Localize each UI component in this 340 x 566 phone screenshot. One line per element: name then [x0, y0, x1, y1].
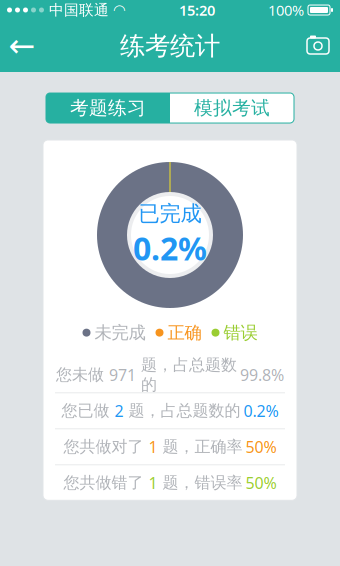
staticText: 1 [148, 436, 157, 457]
staticText: 已完成 [138, 201, 201, 227]
staticText: 50% [245, 472, 276, 493]
staticText: 2 [114, 400, 123, 421]
staticText: ← [8, 28, 35, 64]
staticText: 50% [245, 436, 276, 457]
staticText: 中国联通 [49, 1, 109, 19]
staticText: 模拟考试 [194, 96, 270, 119]
staticText: 您共做对了 [63, 437, 143, 457]
staticText: 题，占总题数的 [128, 401, 240, 421]
staticText: 题，占总题数的 [141, 355, 237, 394]
staticText: 错误 [223, 322, 257, 343]
button[interactable]: Back [0, 24, 44, 68]
staticText: 15:20 [179, 0, 215, 20]
staticText: 99.8% [240, 364, 284, 385]
staticText: 您共做错了 [63, 473, 143, 493]
staticText: 练考统计 [120, 30, 220, 61]
staticText: 正确 [167, 322, 201, 343]
staticText: 未完成 [94, 322, 145, 343]
staticText: 971 [109, 364, 136, 385]
button[interactable]: Camera [296, 24, 340, 68]
staticText: 0.2% [243, 400, 278, 421]
staticText: 您已做 [61, 401, 109, 421]
staticText: 题，正确率 [162, 437, 242, 457]
staticText: ◠ [113, 2, 126, 18]
staticText: 0.2% [133, 227, 207, 269]
staticText: 1 [148, 472, 157, 493]
staticText: 您未做 [56, 365, 104, 385]
staticText: 题，错误率 [162, 473, 242, 493]
button[interactable]: 模拟考试 [170, 93, 294, 123]
staticText: 100% [268, 0, 304, 20]
button[interactable]: 考题练习 [46, 93, 170, 123]
staticText: 考题练习 [70, 96, 146, 119]
